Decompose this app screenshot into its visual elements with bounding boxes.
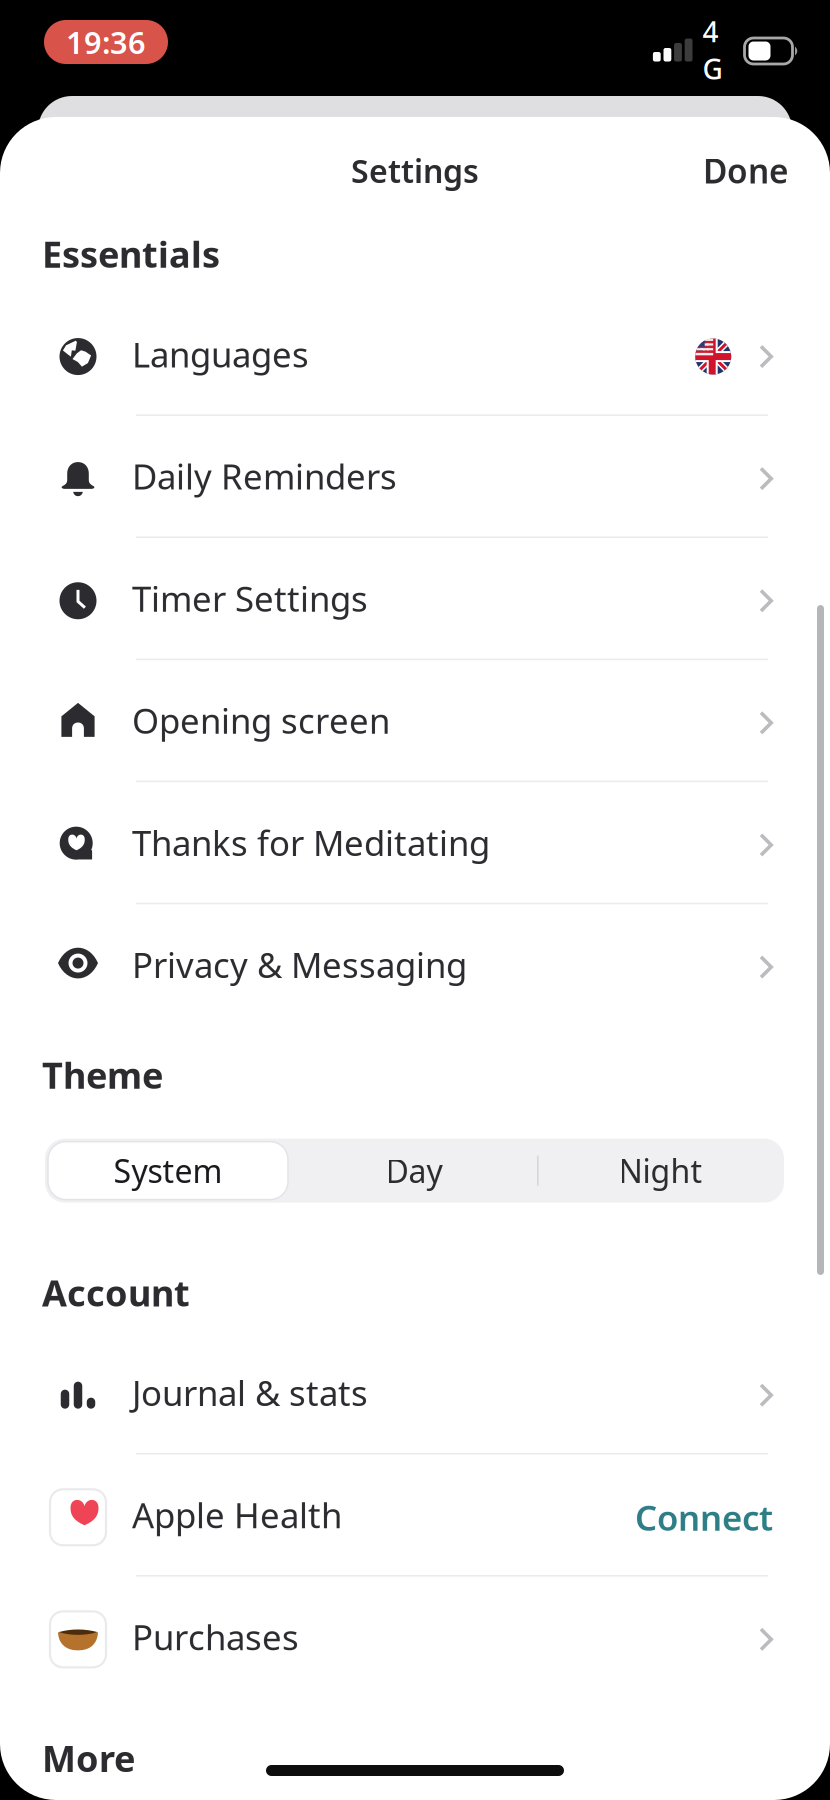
staticText: Purchases [132,1614,299,1660]
staticText: Journal & stats [132,1370,368,1416]
staticText: Apple Health [132,1492,342,1538]
button[interactable]: Languages [0,294,830,414]
button[interactable]: Privacy & Messaging [0,904,830,1025]
staticText: 19:36 [66,22,146,62]
button[interactable]: Apple Health [0,1454,830,1575]
staticText: Settings [351,149,479,192]
staticText: Theme [42,1051,163,1099]
button[interactable]: System [45,1139,291,1203]
staticText: Night [618,1149,702,1192]
button[interactable]: Done [695,134,797,207]
staticText: Opening screen [132,697,390,743]
staticText: Timer Settings [132,575,368,621]
staticText: Done [703,148,789,193]
button[interactable]: Daily Reminders [0,416,830,536]
staticText: Daily Reminders [132,453,397,499]
button[interactable]: Timer Settings [0,538,830,658]
button[interactable]: Day [291,1139,537,1203]
staticText: Thanks for Meditating [132,819,490,865]
button[interactable]: Purchases [0,1577,830,1697]
staticText: More [42,1734,135,1782]
button[interactable]: Night [537,1139,784,1203]
staticText: 4G [702,13,722,87]
staticText: Languages [132,331,309,377]
button[interactable]: Journal & stats [0,1332,830,1453]
staticText: Privacy & Messaging [132,941,467,987]
button[interactable]: Opening screen [0,660,830,781]
staticText: Account [42,1269,190,1316]
button[interactable]: Thanks for Meditating [0,782,830,903]
staticText: Connect [635,1494,773,1540]
staticText: Day [385,1149,442,1192]
staticText: Essentials [42,230,220,278]
staticText: System [113,1149,222,1192]
